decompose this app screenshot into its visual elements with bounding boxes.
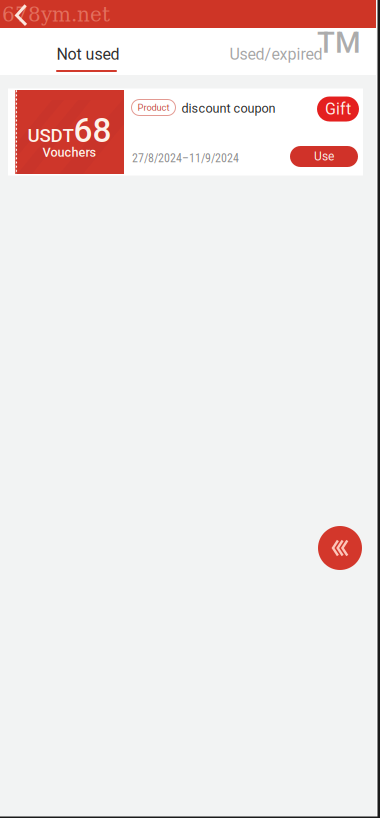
button[interactable]: Collapse panel xyxy=(318,526,362,570)
staticText: Product xyxy=(137,102,169,113)
staticText: 68 xyxy=(73,111,111,150)
button[interactable]: Product xyxy=(131,99,175,115)
staticText: Not used xyxy=(56,45,119,64)
staticText: Vouchers xyxy=(42,145,96,160)
button[interactable]: Use xyxy=(290,146,358,167)
staticText: 678ym.net xyxy=(2,3,110,26)
button[interactable]: Gift xyxy=(317,96,359,121)
staticText: discount coupon xyxy=(181,101,275,116)
button[interactable]: Used/expired xyxy=(186,28,366,75)
staticText: USDT xyxy=(27,125,73,146)
staticText: 27/8/2024–11/9/2024 xyxy=(132,151,239,165)
button[interactable]: Back xyxy=(4,1,44,27)
staticText: TM xyxy=(317,25,361,60)
staticText: Use xyxy=(314,149,334,164)
button[interactable]: Not used xyxy=(0,28,176,75)
staticText: Used/expired xyxy=(229,45,322,64)
staticText: Gift xyxy=(325,100,351,118)
